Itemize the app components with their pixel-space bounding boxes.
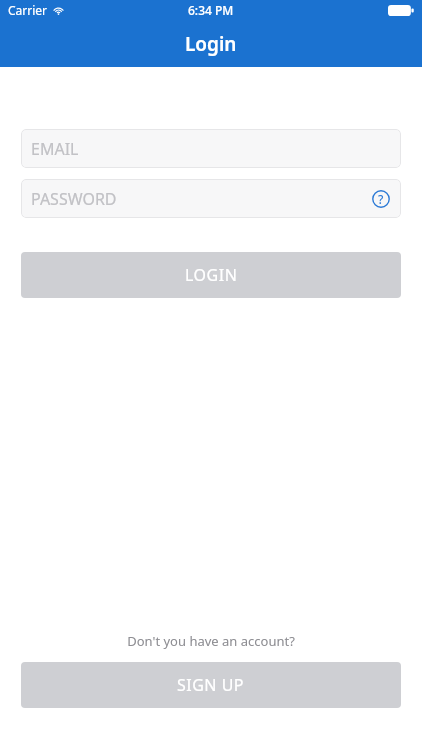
staticText: LOGIN [185,264,238,286]
button[interactable]: LOGIN [21,252,401,298]
staticText: ? [378,191,384,207]
staticText: Don't you have an account? [0,632,422,650]
button[interactable]: PASSWORD [21,179,401,218]
staticText: SIGN UP [177,674,245,696]
staticText: Login [185,31,237,57]
button[interactable]: EMAIL [21,129,401,168]
staticText: Carrier [8,2,48,18]
staticText: EMAIL [31,138,79,160]
staticText: PASSWORD [31,188,117,210]
button[interactable]: SIGN UP [21,662,401,708]
staticText: 6:34 PM [188,2,234,18]
button[interactable]: Password help [370,188,392,210]
